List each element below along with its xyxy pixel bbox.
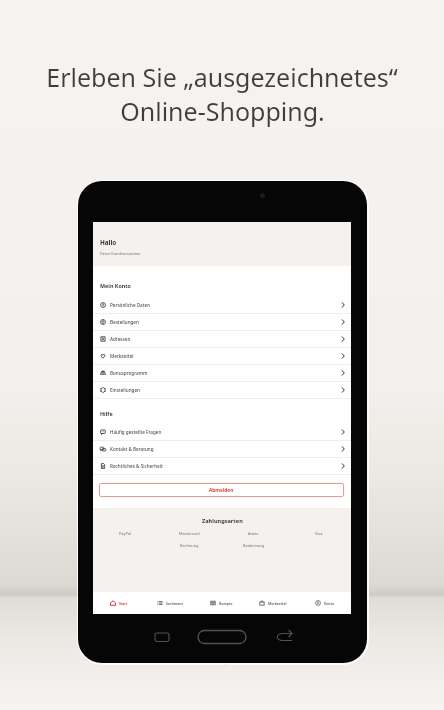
staticText: Rezepte — [219, 601, 233, 606]
staticText: Konto — [324, 601, 335, 606]
staticText: Mein Konto — [100, 282, 131, 289]
staticText: Bestellungen — [110, 319, 139, 325]
button[interactable]: Merkzettel — [247, 592, 299, 614]
button[interactable]: Start — [93, 592, 144, 614]
staticText: Häufig gestellte Fragen — [110, 429, 162, 435]
button[interactable]: Abmelden — [99, 483, 344, 497]
staticText: Start — [119, 601, 128, 606]
staticText: Online-Shopping. — [120, 94, 325, 128]
staticText: Hilfe — [100, 410, 113, 417]
staticText: Rechnung — [180, 543, 199, 548]
staticText: Merkzettel — [110, 353, 134, 359]
staticText: Erleben Sie „ausgezeichnetes“ — [46, 60, 398, 94]
staticText: Deine Kundennummer — [100, 251, 141, 256]
staticText: Abmelden — [209, 487, 234, 494]
staticText: Zahlungsarten — [202, 517, 243, 525]
button[interactable]: Bestellungen — [93, 314, 351, 331]
button[interactable]: Merkzettel — [93, 348, 351, 365]
button[interactable]: Adressen — [93, 331, 351, 348]
staticText: PayPal — [119, 531, 132, 536]
button[interactable]: Sortiment — [144, 592, 195, 614]
staticText: Rechtliches & Sicherheit — [110, 463, 163, 469]
button[interactable]: Bonusprogramm — [93, 365, 351, 382]
button[interactable]: Rechtliches & Sicherheit — [93, 458, 351, 475]
staticText: Persönliche Daten — [110, 302, 151, 308]
button[interactable]: Persönliche Daten — [93, 297, 351, 314]
staticText: Bonusprogramm — [110, 370, 148, 376]
staticText: Adressen — [110, 336, 131, 342]
staticText: Visa — [315, 531, 323, 536]
staticText: Bankeinzug — [243, 543, 265, 548]
button[interactable]: Häufig gestellte Fragen — [93, 424, 351, 441]
button[interactable]: Einstellungen — [93, 382, 351, 399]
staticText: Sortiment — [166, 601, 183, 606]
staticText: Amex — [248, 531, 259, 536]
button[interactable]: Rezepte — [195, 592, 247, 614]
staticText: Merkzettel — [268, 601, 287, 606]
staticText: Einstellungen — [110, 387, 140, 393]
button[interactable]: Kontakt & Beratung — [93, 441, 351, 458]
staticText: Mastercard — [179, 531, 200, 536]
staticText: Kontakt & Beratung — [110, 446, 154, 452]
staticText: Hallo — [100, 238, 117, 247]
button[interactable]: Konto — [299, 592, 351, 614]
